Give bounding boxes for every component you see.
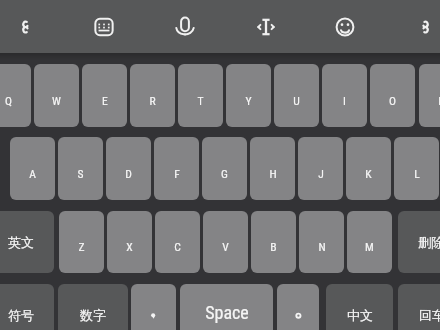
staticText: T <box>197 94 204 108</box>
staticText: M <box>365 240 374 254</box>
staticText: U <box>293 94 300 108</box>
button[interactable]: A <box>10 137 55 200</box>
button[interactable]: Settings <box>7 10 41 44</box>
staticText: Q <box>5 94 12 108</box>
staticText: V <box>222 240 229 254</box>
staticText: B <box>270 240 277 254</box>
staticText: 回车 <box>419 307 440 323</box>
button[interactable]: S <box>58 137 103 200</box>
staticText: D <box>125 167 132 181</box>
staticText: X <box>126 240 133 254</box>
button[interactable]: W <box>34 64 79 127</box>
button[interactable]: Voice input <box>168 9 202 43</box>
staticText: 删除 <box>418 234 440 250</box>
staticText: 符号 <box>8 307 34 323</box>
button[interactable]: J <box>298 137 343 200</box>
staticText: O <box>389 94 396 108</box>
button[interactable]: Move cursor <box>249 10 283 44</box>
button[interactable]: H <box>250 137 295 200</box>
button[interactable]: K <box>346 137 391 200</box>
button[interactable]: M <box>347 211 392 273</box>
button[interactable]: 回车 <box>398 284 440 330</box>
staticText: L <box>414 167 420 181</box>
staticText: E <box>102 94 108 108</box>
button[interactable]: D <box>106 137 151 200</box>
button[interactable]: F <box>154 137 199 200</box>
button[interactable]: I <box>322 64 367 127</box>
staticText: H <box>269 167 277 181</box>
button[interactable]: Y <box>226 64 271 127</box>
staticText: R <box>149 94 156 108</box>
button[interactable]: V <box>203 211 248 273</box>
button[interactable]: E <box>82 64 127 127</box>
button[interactable]: Q <box>0 64 31 127</box>
staticText: 数字 <box>80 307 106 323</box>
staticText: 中文 <box>347 307 373 323</box>
staticText: S <box>77 167 84 181</box>
button[interactable]: 删除 <box>398 211 440 273</box>
button[interactable]: 符号 <box>0 284 54 330</box>
staticText: J <box>318 167 324 181</box>
button[interactable]: Period <box>277 284 319 330</box>
staticText: I <box>343 94 346 108</box>
staticText: Z <box>78 240 85 254</box>
staticText: F <box>174 167 180 181</box>
staticText: Y <box>245 94 252 108</box>
staticText: N <box>318 240 326 254</box>
button[interactable]: N <box>299 211 344 273</box>
button[interactable]: 中文 <box>326 284 393 330</box>
button[interactable]: T <box>178 64 223 127</box>
button[interactable]: R <box>130 64 175 127</box>
button[interactable]: Space <box>180 284 273 330</box>
button[interactable]: O <box>370 64 415 127</box>
staticText: Space <box>205 302 249 323</box>
button[interactable]: Comma <box>131 284 176 330</box>
button[interactable]: B <box>251 211 296 273</box>
staticText: K <box>365 167 372 181</box>
staticText: C <box>174 240 181 254</box>
staticText: G <box>221 167 228 181</box>
button[interactable]: L <box>394 137 439 200</box>
button[interactable]: Keyboard layout <box>87 10 121 44</box>
button[interactable]: 数字 <box>58 284 128 330</box>
button[interactable]: 英文 <box>0 211 54 273</box>
button[interactable]: P <box>419 64 440 127</box>
button[interactable]: More options <box>409 10 440 44</box>
staticText: 英文 <box>8 234 34 250</box>
staticText: W <box>52 94 61 108</box>
staticText: A <box>29 167 36 181</box>
button[interactable]: C <box>155 211 200 273</box>
staticText: P <box>438 94 440 108</box>
button[interactable]: G <box>202 137 247 200</box>
button[interactable]: Z <box>59 211 104 273</box>
button[interactable]: U <box>274 64 319 127</box>
button[interactable]: X <box>107 211 152 273</box>
button[interactable]: Emoji <box>328 10 362 44</box>
